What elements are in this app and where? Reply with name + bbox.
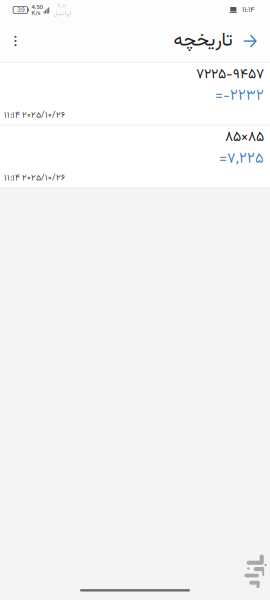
staticText: ۱۱:۱۴ ۲۰۲۵/۱۰/۲۶	[4, 172, 65, 181]
button[interactable]: ۷۲۲۵-۹۴۵۷	[0, 63, 270, 125]
staticText: ۱۱:۱۴ ۲۰۲۵/۱۰/۲۶	[4, 109, 65, 118]
staticText: ۱۱:۱۴	[242, 4, 255, 16]
staticText: 39	[17, 6, 25, 14]
staticText: =۷,۲۲۵	[219, 148, 264, 160]
staticText: ۷۲۲۵-۹۴۵۷	[196, 64, 264, 75]
button[interactable]: More options	[0, 20, 31, 62]
staticText: ۸۵×۸۵	[225, 127, 264, 138]
staticText: ایرانسل	[53, 10, 70, 18]
staticText: =-۲۲۳۲	[215, 85, 264, 97]
staticText: ۹.۱۱	[57, 2, 66, 10]
staticText: K/s	[31, 10, 40, 16]
staticText: 4.50	[31, 4, 43, 10]
staticText: تاریخچه	[173, 26, 232, 56]
button[interactable]: ۸۵×۸۵	[0, 126, 270, 188]
button[interactable]: Back	[237, 20, 263, 62]
